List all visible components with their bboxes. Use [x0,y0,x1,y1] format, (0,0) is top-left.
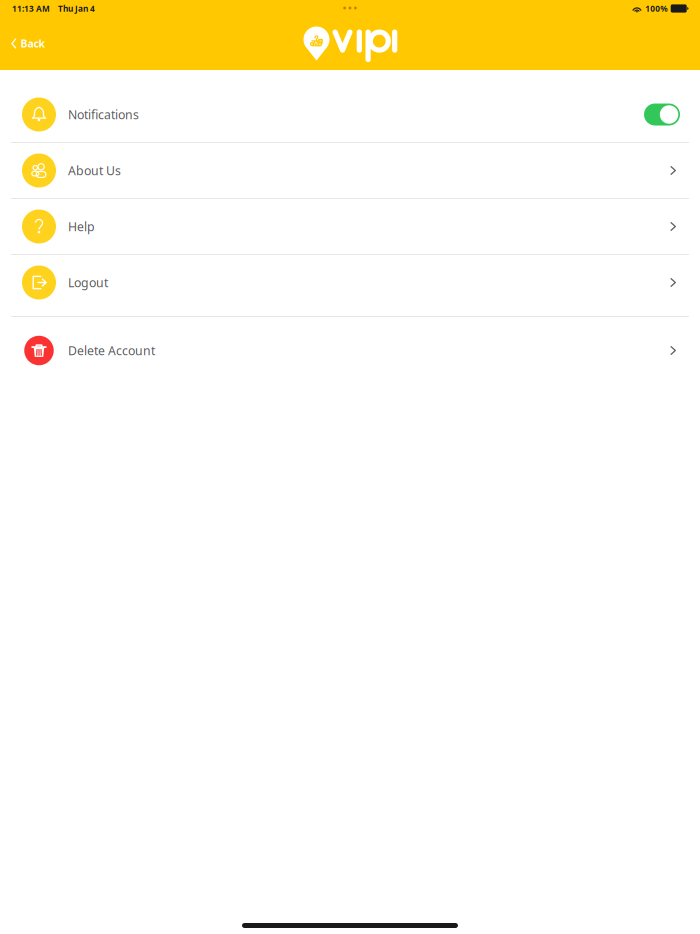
button[interactable]: Logout [0,255,700,310]
button[interactable]: Help [0,199,700,254]
button[interactable]: About Us [0,143,700,198]
button[interactable]: Delete Account [0,317,700,384]
staticText: 100% [645,3,667,14]
staticText: Back [20,37,44,50]
button[interactable]: Back [0,28,58,59]
staticText: Thu Jan 4 [58,3,95,14]
staticText: About Us [68,162,121,179]
staticText: 11:13 AM [12,3,50,14]
staticText: Notifications [68,106,139,123]
staticText: Delete Account [68,342,155,359]
button[interactable]: Notifications [0,87,700,142]
staticText: Logout [68,274,108,291]
staticText: Help [68,218,95,235]
